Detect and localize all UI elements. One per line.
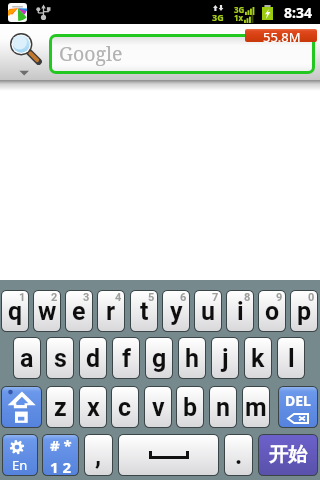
button[interactable]: q: [2, 291, 28, 331]
button[interactable]: Input method settings: [3, 435, 37, 475]
staticText: 0: [308, 291, 315, 304]
button[interactable]: ,: [85, 435, 112, 475]
button[interactable]: [245, 29, 317, 42]
button[interactable]: c: [112, 387, 138, 427]
button[interactable]: a: [14, 338, 40, 378]
other: USB connected: [37, 4, 50, 20]
staticText: 3: [83, 291, 90, 304]
staticText: # *: [50, 435, 72, 455]
button[interactable]: v: [145, 387, 171, 427]
staticText: 7: [212, 291, 219, 304]
staticText: En: [12, 456, 28, 474]
staticText: 2: [51, 291, 58, 304]
staticText: 3G: [234, 4, 245, 15]
button[interactable]: i: [227, 291, 253, 331]
staticText: ,: [95, 441, 102, 470]
staticText: u: [201, 297, 216, 326]
staticText: x: [87, 393, 100, 422]
button[interactable]: b: [177, 387, 203, 427]
staticText: k: [251, 344, 265, 373]
staticText: 1: [19, 291, 26, 304]
button[interactable]: e: [66, 291, 92, 331]
staticText: v: [152, 393, 165, 422]
button[interactable]: r: [98, 291, 124, 331]
button[interactable]: y: [163, 291, 189, 331]
button[interactable]: n: [210, 387, 236, 427]
button[interactable]: x: [80, 387, 106, 427]
button[interactable]: z: [47, 387, 73, 427]
button[interactable]: s: [47, 338, 73, 378]
button[interactable]: Shift: [2, 387, 41, 427]
staticText: 开始: [269, 443, 307, 467]
staticText: .: [235, 441, 243, 470]
staticText: m: [245, 393, 267, 422]
button[interactable]: k: [245, 338, 271, 378]
button[interactable]: u: [195, 291, 221, 331]
button[interactable]: .: [225, 435, 252, 475]
staticText: n: [216, 393, 231, 422]
staticText: 8:34: [284, 3, 312, 22]
button[interactable]: h: [179, 338, 205, 378]
staticText: 8: [244, 291, 251, 304]
staticText: 3G: [212, 11, 224, 23]
button[interactable]: t: [131, 291, 157, 331]
button[interactable]: 开始: [259, 435, 317, 475]
staticText: DEL: [285, 391, 311, 410]
staticText: w: [38, 297, 57, 326]
staticText: l: [288, 344, 295, 373]
button[interactable]: d: [80, 338, 106, 378]
button[interactable]: Space: [119, 435, 218, 475]
button[interactable]: m: [243, 387, 269, 427]
staticText: 1 2: [50, 457, 72, 475]
staticText: b: [183, 393, 198, 422]
staticText: 5: [148, 291, 155, 304]
staticText: i: [237, 297, 244, 326]
staticText: 4: [115, 291, 122, 304]
staticText: 55.8M: [263, 28, 301, 45]
staticText: a: [20, 344, 34, 373]
staticText: e: [72, 297, 86, 326]
staticText: 6: [180, 291, 187, 304]
button[interactable]: # *: [43, 435, 78, 475]
staticText: d: [86, 344, 101, 373]
staticText: Google: [59, 40, 123, 67]
staticText: f: [122, 344, 131, 373]
button[interactable]: Notification: [8, 3, 27, 22]
button[interactable]: l: [278, 338, 304, 378]
staticText: h: [185, 344, 200, 373]
staticText: t: [140, 297, 149, 326]
staticText: r: [106, 297, 116, 326]
staticText: j: [222, 344, 229, 373]
button[interactable]: o: [259, 291, 285, 331]
staticText: g: [152, 344, 167, 373]
other: Battery charging: [262, 5, 273, 20]
staticText: o: [265, 297, 280, 326]
staticText: p: [297, 297, 312, 326]
staticText: 9: [276, 291, 283, 304]
button[interactable]: w: [34, 291, 60, 331]
staticText: c: [118, 393, 132, 422]
staticText: s: [54, 344, 67, 373]
button[interactable]: Delete: [279, 387, 317, 427]
button[interactable]: Google: [52, 37, 312, 71]
button[interactable]: Search provider: [4, 24, 46, 80]
staticText: y: [170, 297, 183, 326]
button[interactable]: j: [212, 338, 238, 378]
button[interactable]: p: [291, 291, 317, 331]
button[interactable]: f: [113, 338, 139, 378]
button[interactable]: g: [146, 338, 172, 378]
staticText: z: [54, 393, 67, 422]
staticText: 1x: [234, 12, 244, 23]
staticText: q: [8, 297, 23, 326]
